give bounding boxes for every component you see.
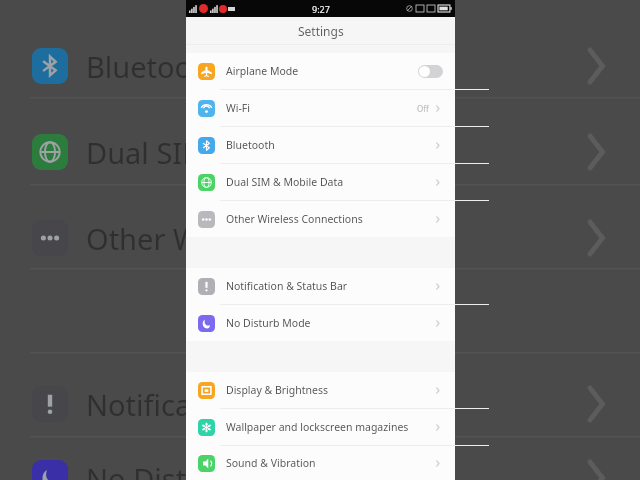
staticText: Display & Brightness	[226, 383, 329, 397]
staticText: Dual SIM	[86, 133, 209, 172]
button[interactable]: Wi-Fi	[186, 90, 455, 126]
button[interactable]: Other Wireless Connections	[186, 201, 455, 237]
staticText: No Distu	[86, 459, 205, 480]
button[interactable]: Bluetooth	[186, 127, 455, 163]
staticText: Off	[417, 103, 429, 114]
staticText: Other Wi	[86, 219, 208, 258]
button[interactable]: Sound & Vibration	[186, 446, 455, 480]
staticText: Notificat	[86, 385, 202, 424]
staticText: 9:27	[312, 3, 330, 15]
button[interactable]: Wallpaper and lockscreen magazines	[186, 409, 455, 445]
staticText: Settings	[298, 23, 344, 39]
staticText: Dual SIM & Mobile Data	[226, 175, 344, 189]
button[interactable]: Airplane Mode	[186, 53, 455, 89]
staticText: Other Wireless Connections	[226, 212, 363, 226]
staticText: Bluetooth	[226, 138, 275, 152]
staticText: Notification & Status Bar	[226, 279, 348, 293]
staticText: Bluetooth	[86, 47, 221, 86]
button[interactable]: Airplane Mode toggle	[418, 65, 443, 78]
button[interactable]: Dual SIM & Mobile Data	[186, 164, 455, 200]
staticText: Airplane Mode	[226, 64, 299, 78]
staticText: Sound & Vibration	[226, 456, 316, 470]
button[interactable]: Display & Brightness	[186, 372, 455, 408]
button[interactable]: No Disturb Mode	[186, 305, 455, 341]
button[interactable]: Notification & Status Bar	[186, 268, 455, 304]
staticText: Wi-Fi	[226, 101, 251, 115]
staticText: Wallpaper and lockscreen magazines	[226, 420, 409, 434]
staticText: No Disturb Mode	[226, 316, 311, 330]
